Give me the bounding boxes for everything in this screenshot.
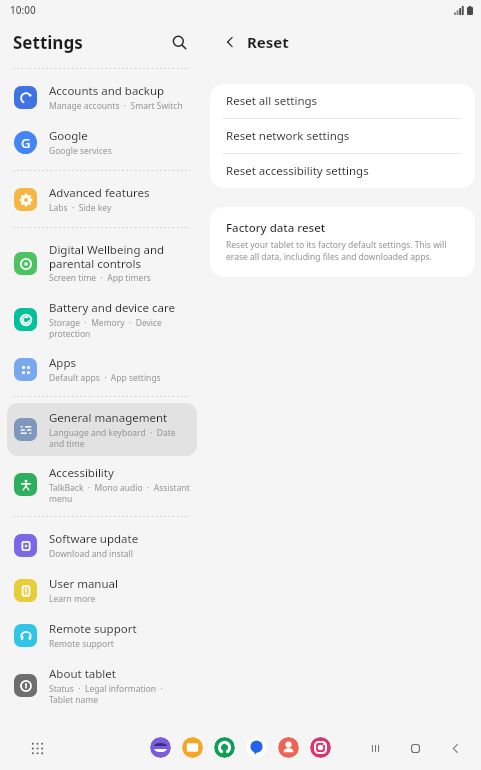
staticText: Labs · Side key (49, 202, 112, 214)
staticText: Reset (247, 32, 289, 52)
button[interactable]: Internet (150, 737, 171, 758)
button[interactable]: Accounts and backup (7, 76, 197, 119)
button[interactable]: Contacts (278, 737, 299, 758)
staticText: Google services (49, 145, 112, 157)
staticText: Reset your tablet to its factory default… (226, 239, 457, 263)
staticText: Google (49, 128, 88, 144)
button[interactable]: Apps (24, 735, 50, 761)
button[interactable]: User manual (7, 569, 197, 612)
button[interactable]: Advanced features (7, 178, 197, 221)
staticText: TalkBack · Mono audio · Assistant menu (49, 482, 191, 504)
staticText: About tablet (49, 666, 116, 682)
button[interactable]: Back (217, 29, 243, 55)
button[interactable]: Factory data reset (210, 207, 475, 277)
button[interactable]: Accessibility (7, 458, 197, 511)
button[interactable]: Reset accessibility settings (210, 154, 475, 188)
button[interactable]: Back (443, 736, 467, 760)
button[interactable]: Battery and device care (7, 293, 197, 346)
staticText: Download and install (49, 548, 133, 560)
staticText: Accessibility (49, 465, 114, 481)
staticText: Reset network settings (226, 128, 350, 144)
staticText: Screen time · App timers (49, 272, 151, 284)
staticText: Battery and device care (49, 300, 176, 316)
button[interactable]: Home (403, 736, 427, 760)
staticText: Digital Wellbeing and parental controls (49, 242, 191, 271)
staticText: User manual (49, 576, 118, 592)
button[interactable]: G (7, 121, 197, 164)
staticText: Status · Legal information · Tablet name (49, 683, 191, 705)
button[interactable]: Recents (363, 736, 387, 760)
staticText: Remote support (49, 621, 137, 637)
button[interactable]: Software update (7, 524, 197, 567)
button[interactable]: Reset network settings (210, 119, 475, 153)
staticText: Default apps · App settings (49, 372, 161, 384)
staticText: Manage accounts · Smart Switch (49, 100, 183, 112)
staticText: General management (49, 410, 168, 426)
staticText: Settings (13, 31, 83, 54)
button[interactable]: Messages (246, 737, 267, 758)
button[interactable]: Digital Wellbeing and parental controls (7, 235, 197, 291)
staticText: Advanced features (49, 185, 150, 201)
button[interactable]: About tablet (7, 659, 197, 712)
button[interactable]: General management (7, 403, 197, 456)
staticText: Learn more (49, 593, 96, 605)
staticText: Accounts and backup (49, 83, 165, 99)
button[interactable]: Apps (7, 348, 197, 391)
staticText: Factory data reset (226, 220, 326, 236)
button[interactable]: Phone (214, 737, 235, 758)
button[interactable]: Instagram (310, 737, 331, 758)
staticText: Software update (49, 531, 139, 547)
staticText: Storage · Memory · Device protection (49, 317, 191, 339)
button[interactable]: Reset all settings (210, 84, 475, 118)
staticText: 10:00 (10, 3, 36, 17)
button[interactable]: My Files (182, 737, 203, 758)
staticText: Reset all settings (226, 93, 318, 109)
staticText: Apps (49, 355, 77, 371)
staticText: G (21, 134, 31, 152)
staticText: Reset accessibility settings (226, 163, 369, 179)
button[interactable]: Search (164, 27, 194, 57)
staticText: Language and keyboard · Date and time (49, 427, 191, 449)
staticText: Remote support (49, 638, 114, 650)
button[interactable]: Remote support (7, 614, 197, 657)
